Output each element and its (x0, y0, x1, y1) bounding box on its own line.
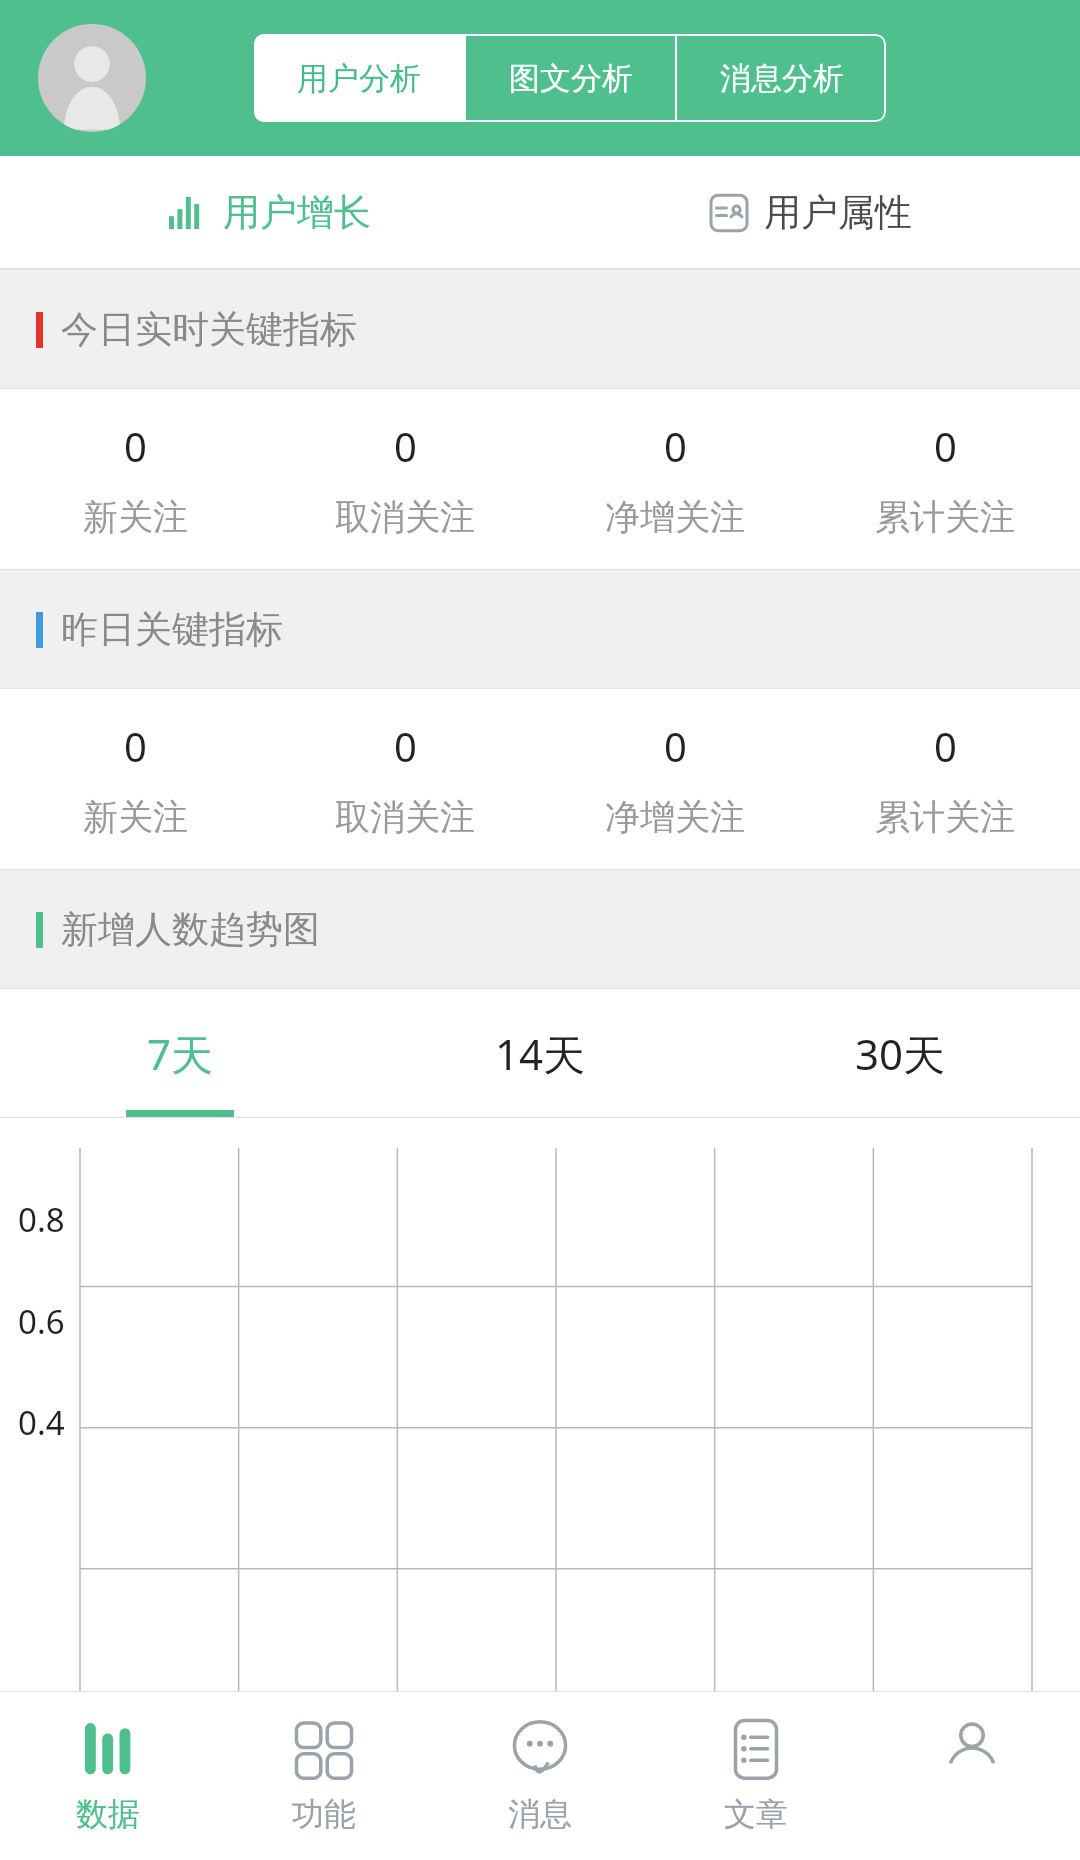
staticText: 净增关注 (605, 795, 745, 839)
button[interactable]: 功能 (216, 1692, 432, 1860)
button[interactable]: 0 (810, 389, 1080, 569)
staticText: 今日实时关键指标 (61, 306, 357, 353)
staticText: 0.6 (18, 1299, 65, 1344)
staticText: 用户分析 (297, 59, 421, 98)
staticText: 图文分析 (509, 59, 633, 98)
button[interactable]: 用户属性 (540, 156, 1080, 268)
staticText: 新增人数趋势图 (61, 906, 320, 953)
staticText: 数据 (76, 1794, 140, 1834)
staticText: 7天 (147, 1025, 214, 1082)
button[interactable]: 我的 (864, 1692, 1080, 1860)
staticText: 0 (934, 719, 957, 773)
staticText: 0.4 (18, 1400, 65, 1445)
staticText: 0 (124, 719, 147, 773)
staticText: 取消关注 (335, 495, 475, 539)
button[interactable]: 用户增长 (0, 156, 540, 268)
staticText: 净增关注 (605, 495, 745, 539)
button[interactable]: 0 (0, 389, 270, 569)
button[interactable]: 消息 (432, 1692, 648, 1860)
staticText: 0 (664, 419, 687, 473)
button[interactable]: 0 (0, 689, 270, 869)
staticText: 取消关注 (335, 795, 475, 839)
button[interactable]: 0 (540, 689, 810, 869)
button[interactable]: 图文分析 (466, 34, 675, 122)
staticText: 0 (124, 419, 147, 473)
staticText: 0 (394, 719, 417, 773)
button[interactable]: 0 (270, 689, 540, 869)
staticText: 0 (934, 419, 957, 473)
staticText: 消息 (508, 1794, 572, 1834)
staticText: 30天 (855, 1025, 946, 1082)
staticText: 功能 (292, 1794, 356, 1834)
staticText: 累计关注 (875, 795, 1015, 839)
staticText: 0 (664, 719, 687, 773)
button[interactable]: 0 (270, 389, 540, 569)
button[interactable]: 数据 (0, 1692, 216, 1860)
staticText: 昨日关键指标 (61, 606, 283, 653)
staticText: 累计关注 (875, 495, 1015, 539)
button[interactable]: 30天 (720, 989, 1080, 1117)
button[interactable]: 0 (810, 689, 1080, 869)
button[interactable]: Profile (38, 24, 146, 132)
staticText: 14天 (495, 1025, 586, 1082)
button[interactable]: 0 (540, 389, 810, 569)
staticText: 新关注 (83, 495, 188, 539)
button[interactable]: 14天 (360, 989, 720, 1117)
staticText: 0 (394, 419, 417, 473)
staticText: 0.8 (18, 1197, 65, 1242)
staticText: 用户属性 (764, 189, 912, 236)
staticText: 用户增长 (223, 189, 371, 236)
staticText: 消息分析 (720, 59, 844, 98)
button[interactable]: 用户分析 (254, 34, 464, 122)
staticText: 新关注 (83, 795, 188, 839)
button[interactable]: 消息分析 (677, 34, 886, 122)
staticText: 文章 (724, 1794, 788, 1834)
button[interactable]: 7天 (0, 989, 360, 1117)
button[interactable]: 文章 (648, 1692, 864, 1860)
